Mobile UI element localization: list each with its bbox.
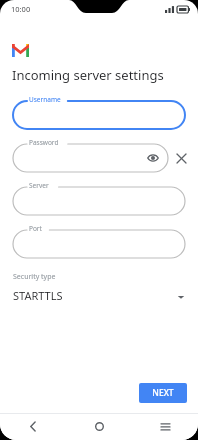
staticText: Security type bbox=[13, 272, 56, 282]
button[interactable]: Back bbox=[0, 413, 66, 440]
staticText: 10:00 bbox=[11, 4, 31, 14]
staticText: STARTTLS bbox=[13, 288, 63, 303]
staticText: Port bbox=[29, 224, 42, 233]
staticText: Incoming server settings bbox=[12, 66, 164, 84]
button[interactable]: Password bbox=[13, 138, 168, 172]
button[interactable]: Port bbox=[13, 224, 185, 258]
staticText: NEXT bbox=[152, 387, 174, 399]
staticText: Server bbox=[29, 181, 49, 190]
button[interactable]: NEXT bbox=[139, 383, 187, 403]
button[interactable]: Server bbox=[13, 181, 185, 215]
staticText: Username bbox=[29, 95, 61, 104]
staticText: Password bbox=[29, 138, 59, 147]
button[interactable]: Clear bbox=[173, 150, 189, 166]
button[interactable]: Recent apps bbox=[132, 413, 198, 440]
button[interactable]: Show password bbox=[146, 151, 160, 165]
button[interactable]: Username bbox=[13, 95, 185, 129]
button[interactable]: Security type bbox=[0, 270, 198, 307]
button[interactable]: Home bbox=[66, 413, 132, 440]
